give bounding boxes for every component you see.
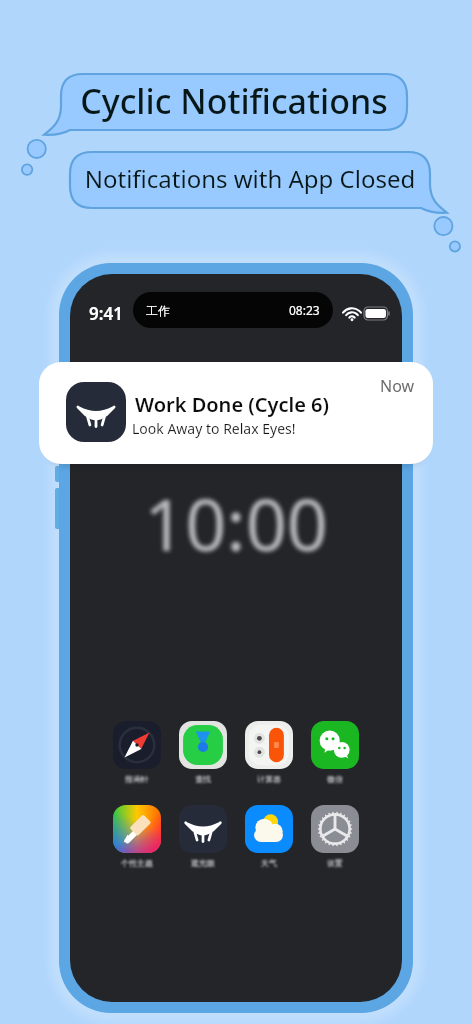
staticText: 微信 xyxy=(327,774,343,784)
staticText: 08:23 xyxy=(289,302,320,318)
staticText: 天气 xyxy=(261,858,277,868)
button[interactable]: Work Done (Cycle 6) xyxy=(39,362,433,464)
staticText: 个性主题 xyxy=(121,858,153,868)
staticText: 设置 xyxy=(327,858,343,868)
button[interactable]: 微信 xyxy=(311,721,359,769)
staticText: Notifications with App Closed xyxy=(70,162,430,208)
button[interactable]: 指南针 xyxy=(113,721,161,769)
staticText: 指南针 xyxy=(125,774,149,784)
staticText: 遮光眼 xyxy=(191,858,215,868)
staticText: 9:41 xyxy=(89,302,123,325)
staticText: Cyclic Notifications xyxy=(61,78,407,130)
button[interactable]: 查找 xyxy=(179,721,227,769)
staticText: 工作 xyxy=(146,303,170,318)
button[interactable]: 设置 xyxy=(311,805,359,853)
staticText: Work Done (Cycle 6) xyxy=(135,391,329,418)
button[interactable]: 天气 xyxy=(245,805,293,853)
button[interactable]: 个性主题 xyxy=(113,805,161,853)
staticText: 10:00 xyxy=(70,474,402,572)
button[interactable]: 计算器 xyxy=(245,721,293,769)
button[interactable]: 遮光眼 xyxy=(179,805,227,853)
staticText: Now xyxy=(380,375,415,397)
staticText: 计算器 xyxy=(257,774,281,784)
staticText: 查找 xyxy=(195,774,211,784)
staticText: Look Away to Relax Eyes! xyxy=(132,419,296,438)
